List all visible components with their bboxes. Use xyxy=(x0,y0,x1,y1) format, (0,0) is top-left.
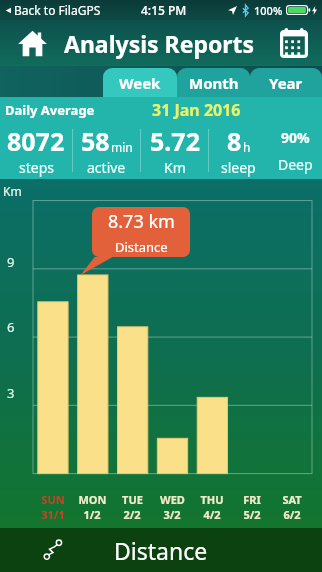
staticText: steps xyxy=(19,158,54,177)
staticText: 31/1 xyxy=(41,507,65,522)
staticText: 6/2 xyxy=(283,507,301,522)
button[interactable]: Week xyxy=(103,68,177,97)
staticText: 4:15 PM xyxy=(141,2,187,18)
staticText: 5.72 xyxy=(150,124,200,158)
staticText: 3/2 xyxy=(163,507,181,522)
staticText: Km xyxy=(3,183,22,199)
staticText: 31 Jan 2016 xyxy=(152,99,241,121)
staticText: SUN xyxy=(41,492,65,507)
staticText: FRI xyxy=(243,492,261,507)
staticText: 8072 xyxy=(7,124,65,158)
staticText: sleep xyxy=(221,158,256,177)
staticText: Back to FilaGPS xyxy=(14,2,101,18)
staticText: Week xyxy=(119,73,161,93)
staticText: Daily Average xyxy=(5,101,95,119)
staticText: 8.73 km xyxy=(108,209,175,234)
staticText: Distance xyxy=(114,535,208,566)
staticText: 5/2 xyxy=(243,507,261,522)
staticText: 9 xyxy=(7,253,15,271)
button[interactable]: Calendar xyxy=(276,25,312,61)
staticText: min xyxy=(111,139,133,155)
button[interactable]: Month xyxy=(177,68,250,97)
staticText: Analysis Reports xyxy=(64,28,255,59)
staticText: 3 xyxy=(7,384,15,402)
staticText: Year xyxy=(269,73,303,93)
staticText: active xyxy=(87,158,126,177)
staticText: 8 xyxy=(227,124,242,158)
button[interactable]: 8.73 km xyxy=(92,207,190,257)
staticText: 4/2 xyxy=(203,507,221,522)
staticText: 90% xyxy=(281,128,310,147)
button[interactable]: Year xyxy=(250,68,322,97)
staticText: 6 xyxy=(7,318,15,336)
button[interactable]: Home xyxy=(14,25,50,61)
other: Distance route xyxy=(42,539,64,561)
staticText: TUE xyxy=(122,492,143,507)
staticText: MON xyxy=(78,492,107,507)
staticText: SAT xyxy=(282,492,302,507)
staticText: Distance xyxy=(115,238,168,256)
staticText: WED xyxy=(160,492,185,507)
staticText: Deep xyxy=(278,155,313,174)
staticText: 1/2 xyxy=(83,507,101,522)
staticText: THU xyxy=(200,492,224,507)
staticText: 2/2 xyxy=(123,507,141,522)
staticText: Km xyxy=(164,158,186,177)
staticText: 58 xyxy=(81,124,110,158)
staticText: Month xyxy=(189,73,239,93)
staticText: h xyxy=(243,139,251,155)
staticText: 100% xyxy=(254,3,283,18)
button[interactable]: Distance route xyxy=(0,528,322,572)
